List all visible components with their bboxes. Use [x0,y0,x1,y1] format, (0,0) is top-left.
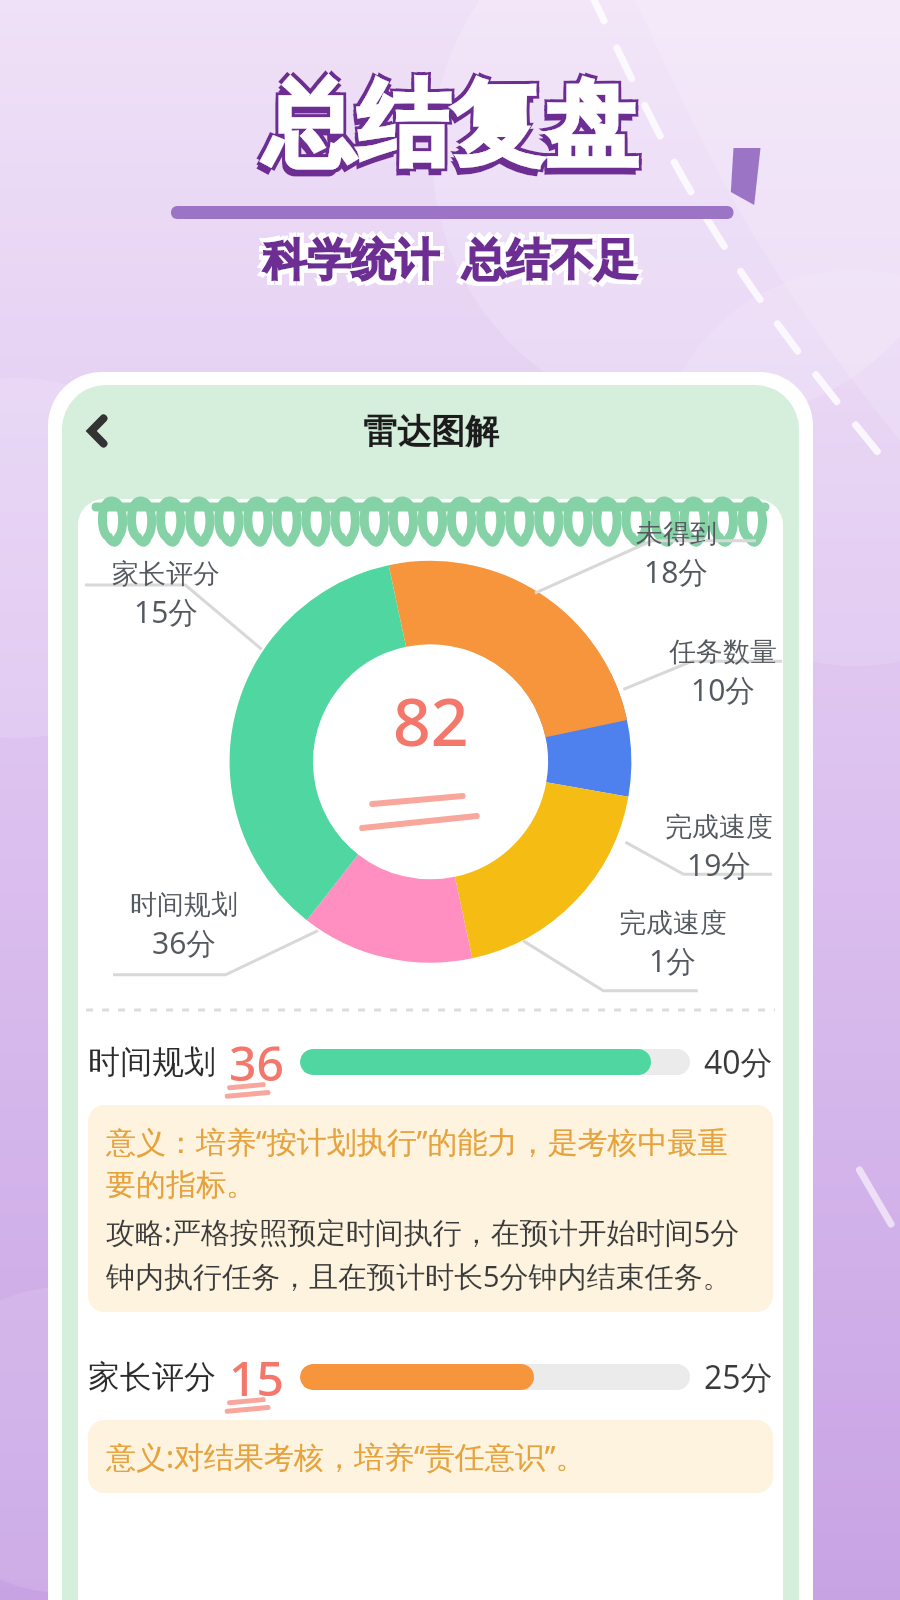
staticText: 科学统计 总结不足 [263,228,638,288]
staticText: 意义:对结果考核，培养“责任意识”。 [106,1436,586,1477]
staticText: 雷达图解 [363,410,499,453]
staticText: 36分 [152,922,217,963]
staticText: 36 [229,1030,284,1095]
staticText: 18分 [644,551,709,592]
staticText: 总结复盘 [265,70,641,186]
staticText: 任务数量 [669,635,777,669]
staticText: 未得到 [636,517,717,551]
staticText: 科学统计 总结不足 [259,224,634,284]
staticText: 总结复盘 [259,64,635,180]
staticText: 15分 [134,591,199,632]
staticText: 攻略:严格按照预定时间执行，在预计开始时间5分钟内执行任务，且在预计时长5分钟内… [106,1212,755,1296]
staticText: 10分 [691,669,756,710]
button[interactable]: 返回 [62,395,134,467]
staticText: 科学统计 总结不足 [259,232,634,292]
staticText: 19分 [687,844,752,885]
staticText: 科学统计 总结不足 [267,224,642,284]
staticText: 家长评分 [112,557,220,591]
staticText: 总结复盘 [259,70,635,186]
staticText: 总结复盘 [262,67,638,183]
staticText: 时间规划 [130,888,238,922]
staticText: 40分 [704,1040,773,1084]
staticText: 总结复盘 [259,74,635,190]
staticText: 总结复盘 [265,64,641,180]
staticText: 15 [229,1345,284,1410]
staticText: 时间规划 [88,1042,216,1082]
button[interactable]: 家长评分 [88,1334,773,1420]
staticText: 意义：培养“按计划执行”的能力，是考核中最重要的指标。 [106,1121,755,1204]
staticText: 家长评分 [88,1357,216,1397]
staticText: 科学统计 总结不足 [267,232,642,292]
staticText: 1分 [649,940,697,981]
staticText: 完成速度 [665,810,773,844]
staticText: 25分 [704,1355,773,1399]
staticText: 完成速度 [619,906,727,940]
button[interactable]: 时间规划 [88,1019,773,1105]
staticText: 82 [393,675,469,765]
